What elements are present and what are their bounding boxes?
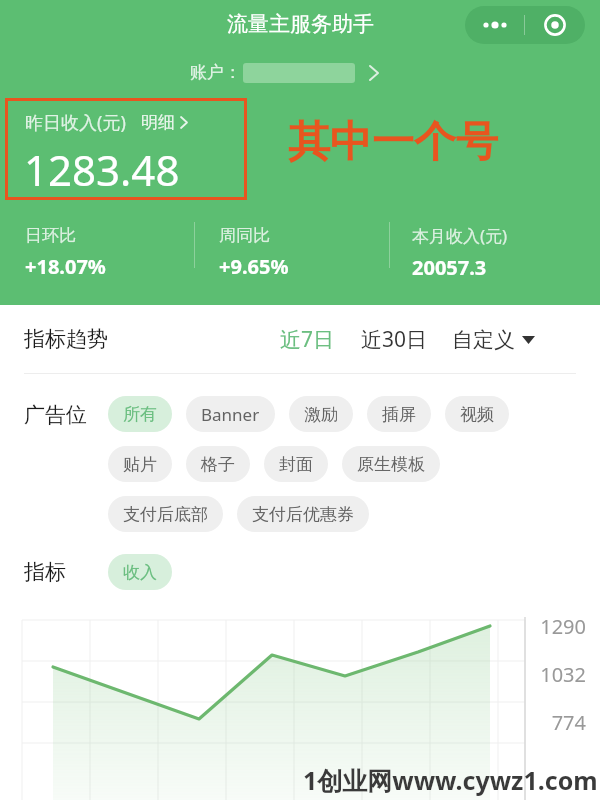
staticText: +9.65% (219, 253, 289, 280)
staticText: 支付后底部 (123, 504, 208, 525)
staticText: 其中一个号 (288, 116, 498, 169)
button[interactable]: 账户： (190, 62, 379, 83)
button[interactable]: 原生模板 (342, 446, 440, 482)
staticText: 20057.3 (412, 254, 487, 281)
button[interactable]: 贴片 (108, 446, 172, 482)
staticText: 近7日 (280, 325, 335, 354)
button[interactable]: 近7日 (278, 325, 337, 354)
staticText: 日环比 (25, 225, 76, 246)
staticText: 支付后优惠券 (252, 504, 354, 525)
button[interactable]: 收入 (108, 554, 172, 590)
staticText: 1创业网www.cywz1.com (303, 763, 598, 797)
button[interactable]: 支付后底部 (108, 496, 223, 532)
staticText: 本月收入(元) (412, 224, 508, 247)
button[interactable]: 视频 (445, 396, 509, 432)
staticText: 自定义 (452, 327, 515, 353)
staticText: 近30日 (361, 325, 428, 354)
staticText: +18.07% (25, 253, 106, 280)
staticText: 1290 (524, 613, 586, 640)
staticText: 流量主服务助手 (227, 11, 374, 37)
staticText: 指标趋势 (24, 326, 108, 352)
button[interactable]: 支付后优惠券 (237, 496, 369, 532)
staticText: 贴片 (123, 454, 157, 475)
staticText: 激励 (304, 404, 338, 425)
button[interactable]: More options (465, 6, 524, 44)
staticText: 账户： (190, 62, 241, 83)
staticText: 视频 (460, 404, 494, 425)
staticText: 封面 (279, 454, 313, 475)
staticText: 指标 (24, 559, 108, 585)
button[interactable]: 格子 (186, 446, 250, 482)
staticText: 收入 (123, 562, 157, 583)
button[interactable]: 近30日 (359, 325, 430, 354)
button[interactable]: 自定义 (452, 327, 535, 353)
staticText: 原生模板 (357, 454, 425, 475)
button[interactable]: 所有 (108, 396, 172, 432)
staticText: 插屏 (382, 404, 416, 425)
staticText: 格子 (201, 454, 235, 475)
button[interactable]: Banner (186, 396, 275, 432)
button[interactable]: 昨日收入(元) (25, 110, 188, 135)
staticText: 明细 (141, 112, 175, 133)
button[interactable]: 插屏 (367, 396, 431, 432)
staticText: 所有 (123, 404, 157, 425)
button[interactable]: Close (525, 6, 585, 44)
staticText: Banner (201, 403, 260, 426)
staticText: 广告位 (24, 402, 104, 428)
staticText: 昨日收入(元) (25, 110, 126, 135)
staticText: 1032 (524, 661, 586, 688)
button[interactable]: 封面 (264, 446, 328, 482)
button[interactable]: 激励 (289, 396, 353, 432)
staticText: 774 (524, 709, 586, 736)
staticText: 周同比 (219, 225, 270, 246)
staticText: 1283.48 (24, 141, 180, 198)
